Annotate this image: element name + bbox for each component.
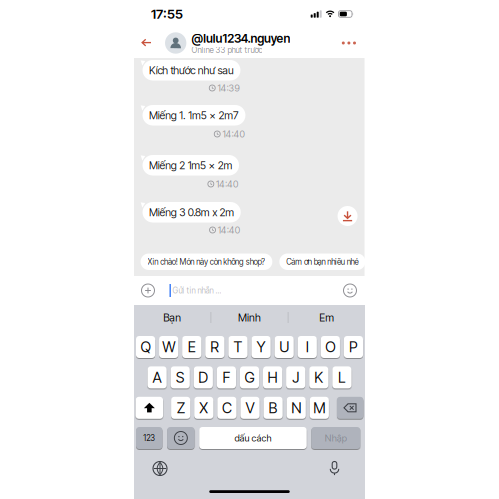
staticText: Em	[319, 311, 334, 324]
button[interactable]: Minh	[211, 305, 288, 330]
staticText: Y	[257, 338, 266, 356]
button[interactable]: A	[147, 366, 167, 388]
staticText: P	[349, 338, 358, 356]
button[interactable]: Emoji	[343, 284, 356, 297]
staticText: E	[188, 338, 196, 356]
staticText: Miếng 2 1m5 x 2m	[149, 159, 232, 172]
button[interactable]: L	[332, 366, 351, 388]
staticText: 123	[143, 433, 155, 443]
staticText: Bạn	[163, 311, 181, 324]
button[interactable]: K	[309, 366, 328, 388]
button[interactable]: Back	[134, 39, 165, 47]
button[interactable]: Delete	[337, 397, 363, 419]
staticText: D	[198, 369, 208, 386]
staticText: Q	[141, 338, 151, 356]
button[interactable]: Xin chào! Món này còn không shop?	[140, 253, 272, 270]
button[interactable]: Dictate	[328, 461, 341, 475]
button[interactable]: P	[344, 336, 363, 358]
staticText: S	[176, 369, 185, 386]
staticText: Xin chào! Món này còn không shop?	[147, 257, 265, 266]
button[interactable]: E	[182, 336, 201, 358]
staticText: Miếng 3 0.8m x 2m	[149, 206, 234, 219]
button[interactable]: I	[298, 336, 317, 358]
button[interactable]: dấu cách	[199, 427, 307, 449]
button[interactable]: S	[171, 366, 190, 388]
button[interactable]: T	[228, 336, 248, 358]
button[interactable]: O	[321, 336, 340, 358]
button[interactable]: 123	[136, 427, 162, 449]
staticText: F	[222, 369, 230, 386]
button[interactable]: Next keyboard	[153, 461, 167, 475]
staticText: W	[162, 338, 175, 356]
button[interactable]: Em	[288, 305, 365, 330]
button[interactable]: R	[205, 336, 224, 358]
button[interactable]: Shift	[136, 397, 163, 419]
staticText: N	[291, 399, 301, 416]
staticText: O	[325, 338, 335, 356]
button[interactable]: G	[240, 366, 259, 388]
button[interactable]: More options	[342, 41, 365, 44]
button[interactable]: V	[240, 397, 260, 419]
button[interactable]: Q	[136, 336, 155, 358]
button[interactable]: C	[217, 397, 236, 419]
staticText: B	[269, 399, 278, 416]
staticText: Kích thước như sau	[149, 64, 234, 77]
staticText: Minh	[238, 311, 261, 324]
staticText: Cảm ơn bạn nhiều nhé	[286, 257, 358, 266]
staticText: T	[233, 338, 242, 356]
button[interactable]: Add attachment	[141, 284, 154, 297]
button[interactable]: W	[159, 336, 178, 358]
staticText: Miếng 1. 1m5 x 2m7	[149, 109, 239, 122]
staticText: 14:40	[218, 224, 240, 235]
staticText: Nhập	[325, 432, 347, 443]
staticText: U	[279, 338, 289, 356]
staticText: I	[306, 338, 309, 356]
staticText: X	[199, 399, 208, 416]
staticText: L	[338, 369, 346, 386]
staticText: J	[292, 369, 299, 386]
button[interactable]: Emoji	[167, 427, 195, 449]
button[interactable]: M	[310, 397, 329, 419]
button[interactable]: X	[194, 397, 213, 419]
button[interactable]: B	[263, 397, 283, 419]
staticText: 14:40	[216, 178, 238, 189]
button[interactable]: H	[263, 366, 282, 388]
button[interactable]: D	[194, 366, 213, 388]
button[interactable]: Z	[171, 397, 190, 419]
button[interactable]: N	[287, 397, 306, 419]
staticText: A	[153, 369, 162, 386]
staticText: 14:40	[222, 128, 244, 139]
staticText: Online 33 phút trước	[191, 45, 262, 55]
staticText: 17:55	[151, 6, 183, 22]
button[interactable]: Y	[251, 336, 271, 358]
button[interactable]: Nhập	[311, 427, 360, 449]
staticText: 14:39	[217, 82, 239, 93]
staticText: Z	[177, 399, 185, 416]
button[interactable]: U	[275, 336, 294, 358]
button[interactable]: J	[286, 366, 305, 388]
button[interactable]: F	[217, 366, 236, 388]
staticText: Gửi tin nhắn ...	[172, 286, 221, 295]
button[interactable]: Scroll to latest	[337, 206, 357, 226]
staticText: M	[313, 399, 325, 416]
button[interactable]: Message input	[154, 284, 343, 297]
staticText: V	[245, 399, 254, 416]
staticText: H	[268, 369, 278, 386]
staticText: G	[244, 369, 254, 386]
button[interactable]: Bạn	[134, 305, 210, 330]
staticText: K	[314, 369, 323, 386]
staticText: C	[222, 399, 232, 416]
button[interactable]: Cảm ơn bạn nhiều nhé	[279, 253, 365, 270]
staticText: dấu cách	[234, 432, 271, 443]
staticText: R	[210, 338, 219, 356]
staticText: @lulu1234.nguyen	[191, 31, 290, 45]
